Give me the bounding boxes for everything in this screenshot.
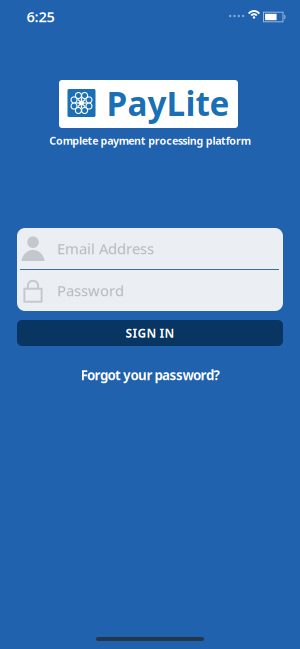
button[interactable]: Email Address [17,228,283,269]
button[interactable]: Forgot your password? [80,366,219,384]
staticText: PayLite [106,81,229,125]
staticText: Forgot your password? [80,366,219,384]
staticText: 6:25 [26,7,54,26]
button[interactable]: SIGN IN [17,320,283,346]
staticText: Email Address [57,239,154,258]
staticText: SIGN IN [125,325,174,341]
staticText: Password [57,281,124,300]
staticText: Complete payment processing platform [49,133,251,148]
button[interactable]: Password [17,270,283,311]
